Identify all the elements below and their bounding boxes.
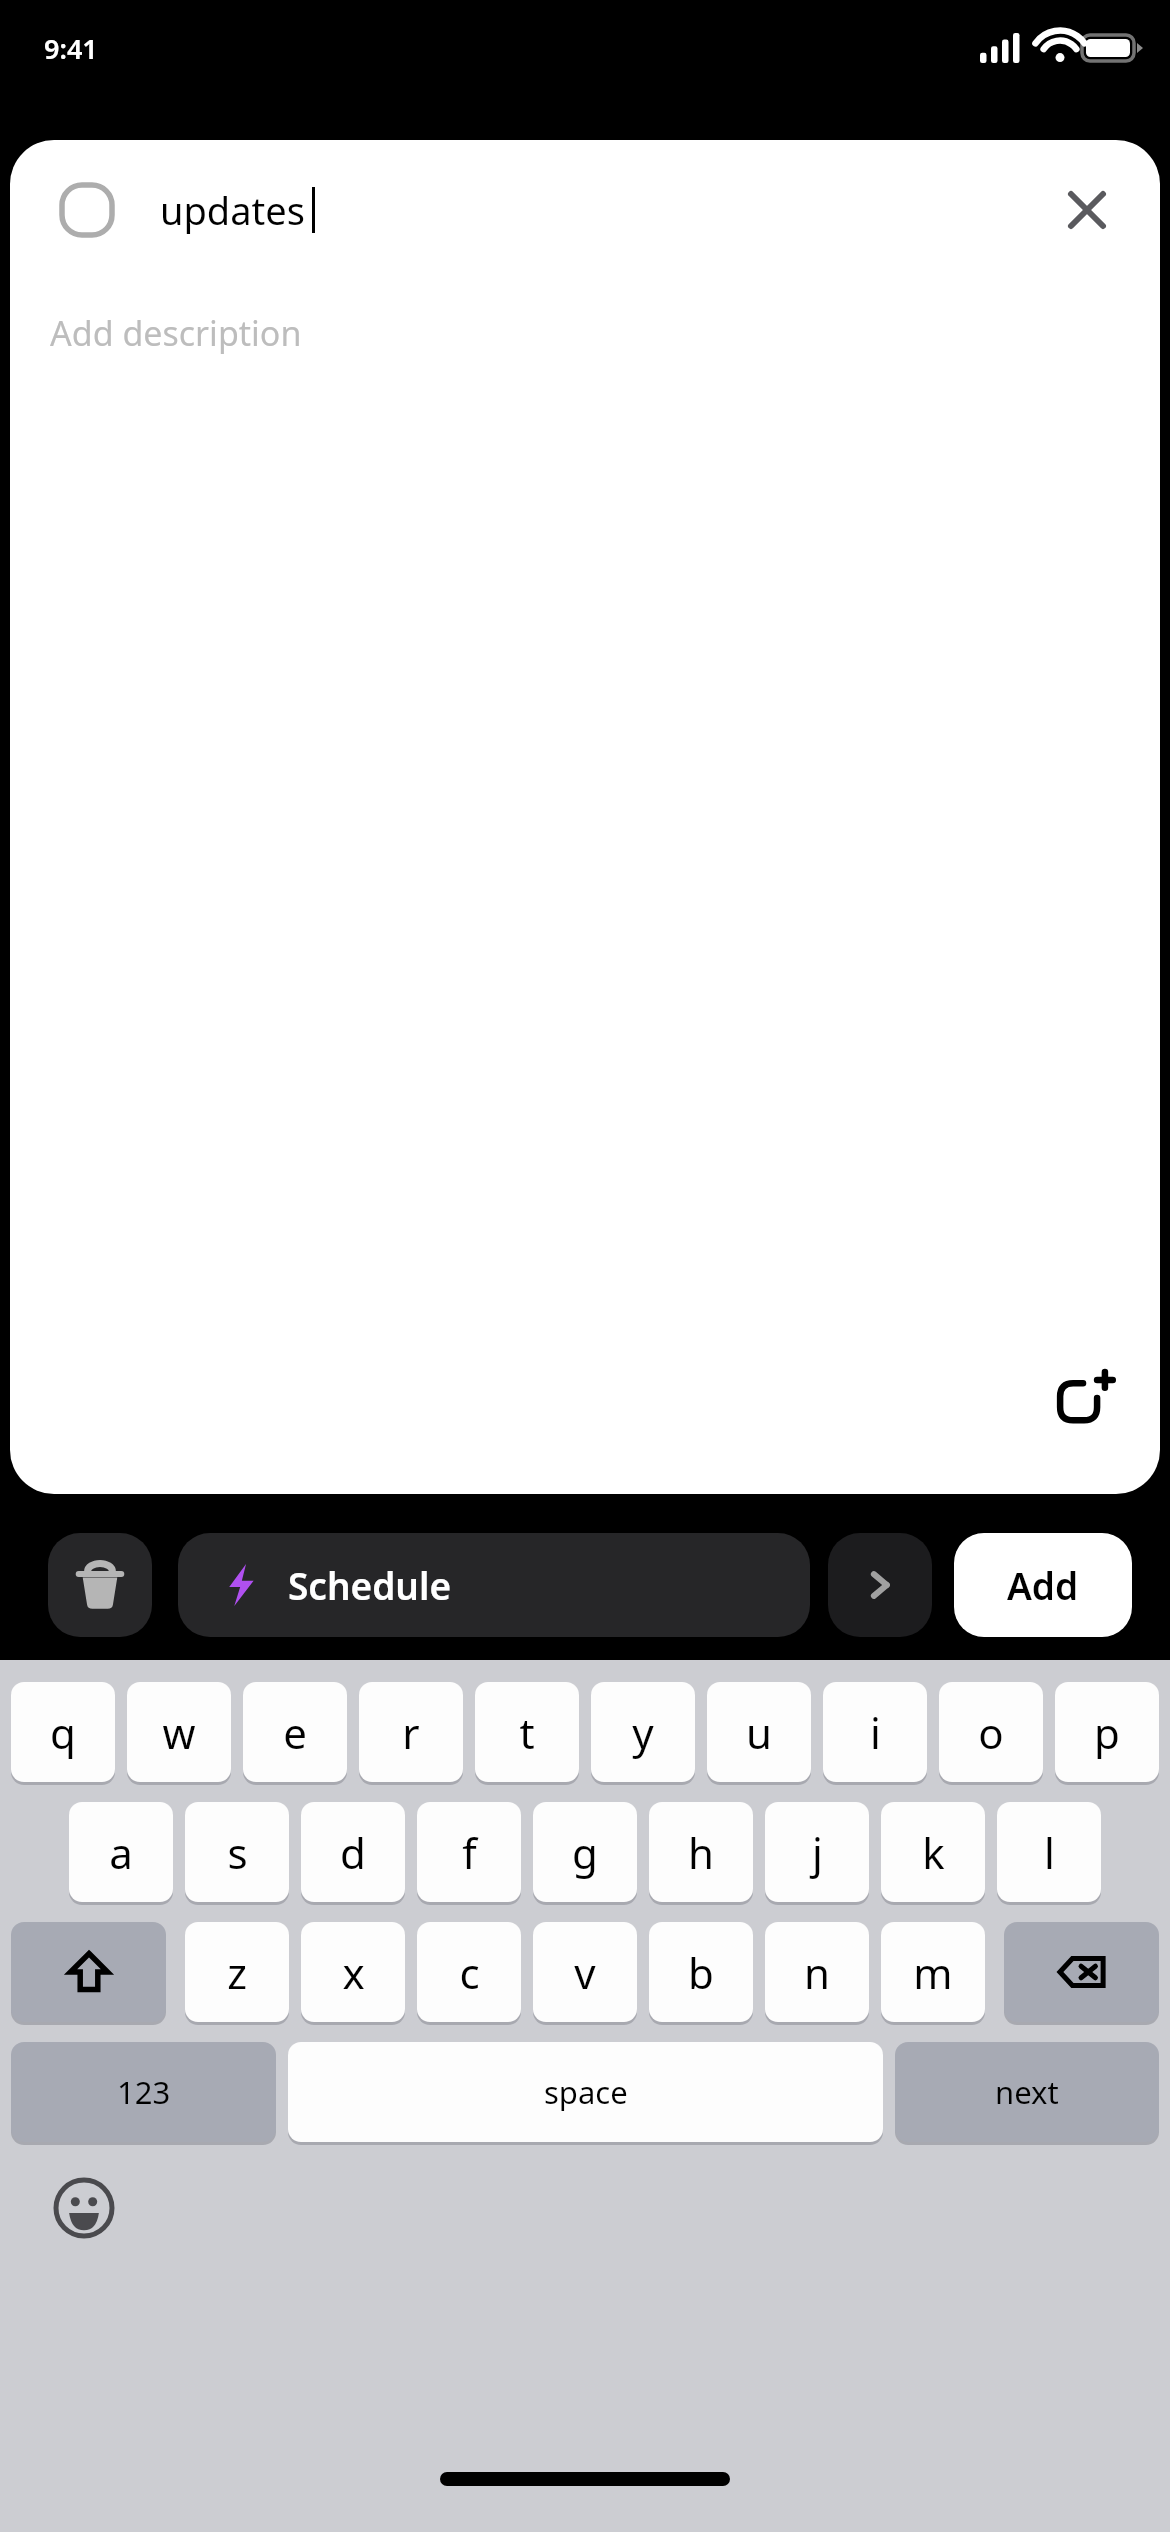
button[interactable]: l <box>997 1802 1101 1902</box>
button[interactable]: z <box>185 1922 289 2022</box>
staticText: z <box>227 1944 247 2001</box>
button[interactable]: a <box>69 1802 173 1902</box>
staticText: y <box>632 1704 654 1761</box>
staticText: updates <box>160 184 305 236</box>
button[interactable] <box>58 181 116 239</box>
button[interactable]: b <box>649 1922 753 2022</box>
staticText: a <box>109 1824 133 1881</box>
other: Backspace <box>1004 1922 1159 2022</box>
staticText: 123 <box>117 2071 171 2113</box>
button[interactable]: Emoji <box>48 2172 120 2244</box>
button[interactable]: i <box>823 1682 927 1782</box>
button[interactable]: t <box>475 1682 579 1782</box>
button[interactable]: Close <box>1052 175 1122 245</box>
staticText: q <box>50 1704 76 1761</box>
button[interactable]: n <box>765 1922 869 2022</box>
button[interactable]: Add subtask <box>1048 1360 1126 1438</box>
staticText: j <box>812 1824 823 1881</box>
button[interactable]: e <box>243 1682 347 1782</box>
staticText: v <box>574 1944 596 2001</box>
button[interactable]: Add <box>954 1533 1132 1637</box>
staticText: Add <box>1007 1560 1079 1610</box>
button[interactable]: h <box>649 1802 753 1902</box>
staticText: r <box>402 1704 420 1761</box>
button[interactable]: next <box>895 2042 1159 2142</box>
button[interactable]: w <box>127 1682 231 1782</box>
staticText: u <box>746 1704 772 1761</box>
staticText: m <box>913 1944 953 2001</box>
staticText: h <box>688 1824 714 1881</box>
button[interactable]: o <box>939 1682 1043 1782</box>
button[interactable]: s <box>185 1802 289 1902</box>
button[interactable]: f <box>417 1802 521 1902</box>
button[interactable]: x <box>301 1922 405 2022</box>
staticText: e <box>283 1704 307 1761</box>
button[interactable]: space <box>288 2042 883 2142</box>
button[interactable]: g <box>533 1802 637 1902</box>
staticText: i <box>870 1704 881 1761</box>
staticText: f <box>462 1824 477 1881</box>
staticText: d <box>340 1824 366 1881</box>
staticText: t <box>519 1704 535 1761</box>
staticText: c <box>459 1944 480 2001</box>
staticText: s <box>227 1824 248 1881</box>
staticText: g <box>572 1824 598 1881</box>
button[interactable]: k <box>881 1802 985 1902</box>
button[interactable]: d <box>301 1802 405 1902</box>
button[interactable]: Add description <box>50 310 302 356</box>
staticText: b <box>688 1944 714 2001</box>
button[interactable]: m <box>881 1922 985 2022</box>
staticText: x <box>342 1944 365 2001</box>
other: Shift <box>11 1922 166 2022</box>
button[interactable]: More options <box>828 1533 932 1637</box>
staticText: l <box>1044 1824 1055 1881</box>
button[interactable] <box>1004 1922 1159 2022</box>
button[interactable]: c <box>417 1922 521 2022</box>
button[interactable]: j <box>765 1802 869 1902</box>
staticText: 9:41 <box>44 30 98 67</box>
button[interactable]: p <box>1055 1682 1159 1782</box>
button[interactable]: y <box>591 1682 695 1782</box>
staticText: o <box>978 1704 1004 1761</box>
button[interactable]: v <box>533 1922 637 2022</box>
staticText: k <box>922 1824 945 1881</box>
button[interactable]: r <box>359 1682 463 1782</box>
button[interactable]: u <box>707 1682 811 1782</box>
staticText: n <box>804 1944 830 2001</box>
staticText: Schedule <box>288 1560 452 1610</box>
button[interactable]: 123 <box>11 2042 276 2142</box>
button[interactable]: Delete <box>48 1533 152 1637</box>
staticText: w <box>162 1704 196 1761</box>
staticText: p <box>1094 1704 1120 1761</box>
staticText: next <box>995 2071 1059 2113</box>
staticText: space <box>544 2071 628 2113</box>
button[interactable]: q <box>11 1682 115 1782</box>
button[interactable]: Schedule <box>178 1533 810 1637</box>
button[interactable] <box>11 1922 166 2022</box>
